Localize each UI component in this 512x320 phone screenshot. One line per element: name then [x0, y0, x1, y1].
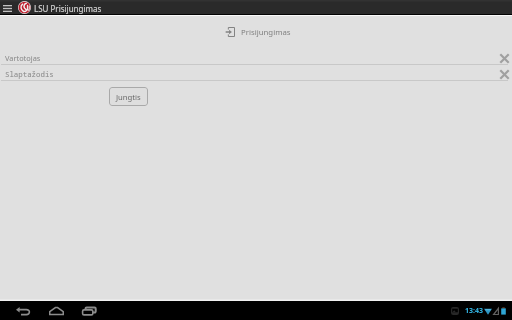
button[interactable]: Clear — [495, 65, 511, 80]
staticText: Prisijungimas — [241, 27, 291, 38]
button[interactable]: Clear — [495, 49, 511, 64]
button[interactable]: Back — [14, 301, 32, 320]
staticText: 13:43 — [465, 306, 483, 316]
staticText: LSU Prisijungimas — [34, 3, 102, 14]
button[interactable]: Home — [47, 301, 65, 320]
staticText: Slaptažodis — [5, 69, 54, 79]
button[interactable]: Screenshot — [448, 301, 462, 320]
button[interactable]: Jungtis — [109, 87, 148, 106]
button[interactable]: Vartotojas — [0, 49, 512, 64]
button[interactable]: Recent apps — [80, 301, 98, 320]
button[interactable]: Slaptažodis — [0, 65, 512, 80]
button[interactable]: Menu — [0, 0, 15, 14]
staticText: Jungtis — [116, 92, 141, 102]
staticText: Vartotojas — [5, 53, 41, 63]
button[interactable]: LSU Prisijungimas — [15, 0, 106, 14]
